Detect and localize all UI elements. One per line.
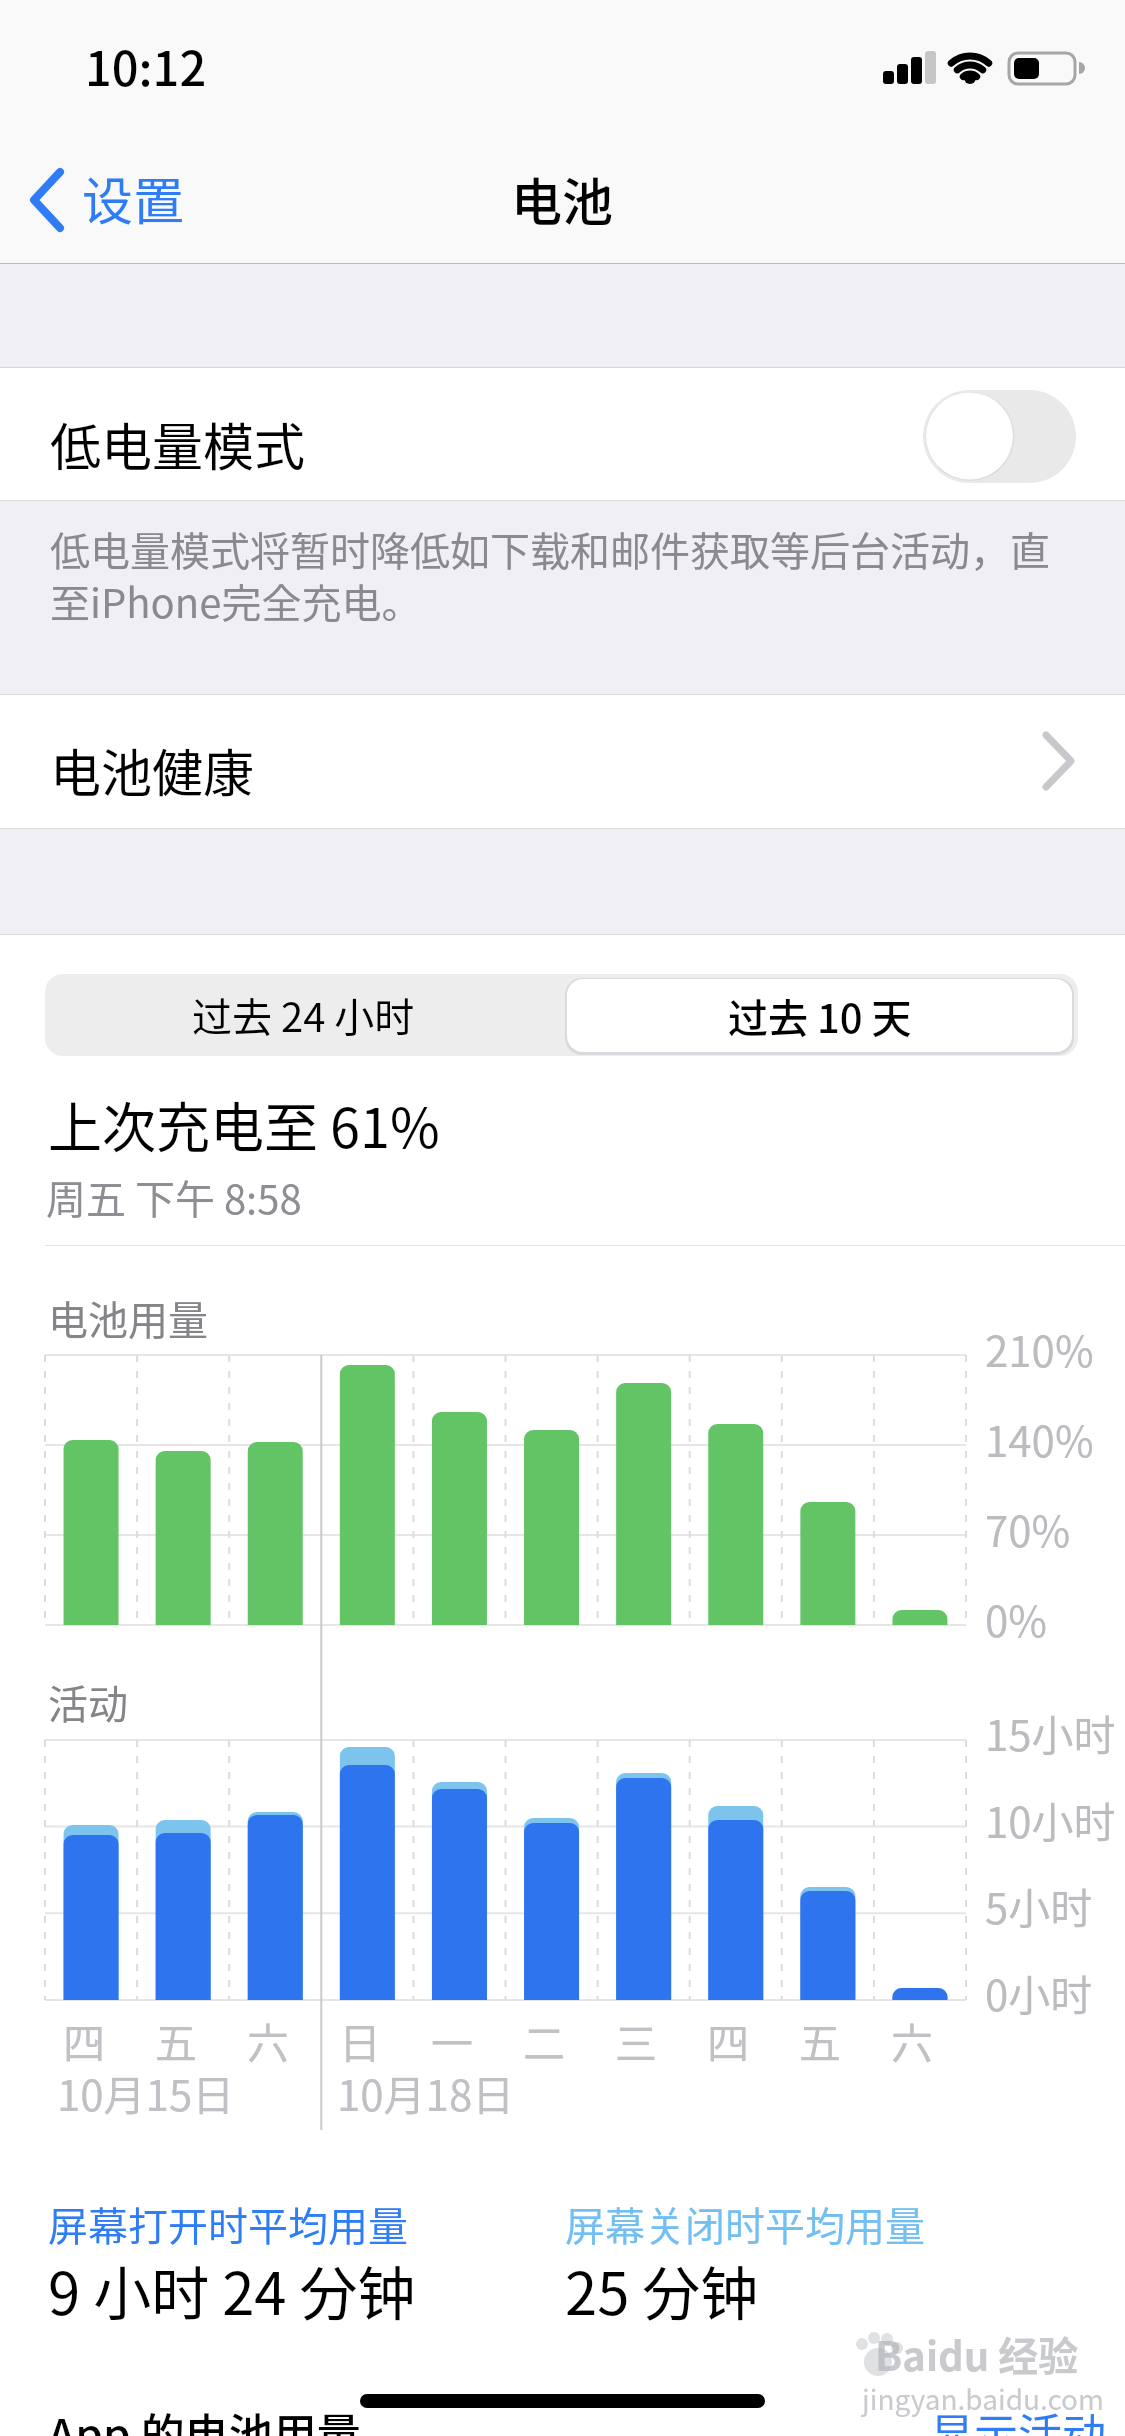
staticText: 10:12 <box>85 31 207 99</box>
staticText: 至iPhone完全充电。 <box>50 572 422 630</box>
staticText: 一 <box>431 2010 474 2071</box>
staticText: 低电量模式将暂时降低如下载和邮件获取等后台活动，直 <box>50 520 1050 578</box>
staticText: 0小时 <box>985 1962 1093 2023</box>
staticText: 周五 下午 8:58 <box>46 1168 302 1226</box>
staticText: 5小时 <box>985 1875 1093 1936</box>
staticText: Baidu 经验 <box>875 2325 1079 2383</box>
staticText: 屏幕关闭时平均用量 <box>565 2195 925 2253</box>
staticText: 10月15日 <box>57 2062 235 2123</box>
button[interactable]: 过去 10 天 <box>567 979 1072 1052</box>
staticText: 15小时 <box>985 1702 1116 1763</box>
staticText: 活动 <box>48 1673 128 1731</box>
staticText: 电池 <box>511 162 614 232</box>
staticText: 0% <box>985 1588 1047 1649</box>
button[interactable] <box>20 160 200 240</box>
staticText: 电池用量 <box>48 1289 208 1347</box>
staticText: App 的电池用量 <box>48 2400 361 2436</box>
staticText: 四 <box>707 2010 750 2071</box>
staticText: 210% <box>985 1318 1094 1379</box>
staticText: jingyan.baidu.com <box>862 2378 1104 2419</box>
staticText: 屏幕打开时平均用量 <box>48 2195 408 2253</box>
button[interactable]: 过去 24 小时 <box>45 974 562 1056</box>
staticText: 140% <box>985 1408 1094 1469</box>
staticText: 25 分钟 <box>565 2248 759 2332</box>
staticText: 显示活动 <box>930 2400 1106 2436</box>
staticText: 日 <box>339 2010 382 2071</box>
staticText: 四 <box>63 2010 106 2071</box>
staticText: 电池健康 <box>50 733 255 807</box>
staticText: 三 <box>615 2010 658 2071</box>
staticText: 10小时 <box>985 1789 1116 1850</box>
staticText: 过去 24 小时 <box>192 986 415 1044</box>
staticText: 过去 10 天 <box>728 987 912 1045</box>
staticText: 低电量模式 <box>50 407 306 481</box>
staticText: 70% <box>985 1498 1071 1559</box>
staticText: 上次充电至 61% <box>48 1085 440 1163</box>
button[interactable] <box>0 695 1125 828</box>
staticText: 五 <box>799 2010 842 2071</box>
staticText: 10月18日 <box>337 2062 515 2123</box>
button[interactable] <box>0 368 1125 500</box>
staticText: 9 小时 24 分钟 <box>48 2248 416 2332</box>
staticText: 设置 <box>82 161 185 235</box>
staticText: 六 <box>891 2010 934 2071</box>
staticText: 五 <box>155 2010 198 2071</box>
staticText: 二 <box>523 2010 566 2071</box>
staticText: 六 <box>247 2010 290 2071</box>
button[interactable]: 显示活动 <box>930 2400 1125 2436</box>
